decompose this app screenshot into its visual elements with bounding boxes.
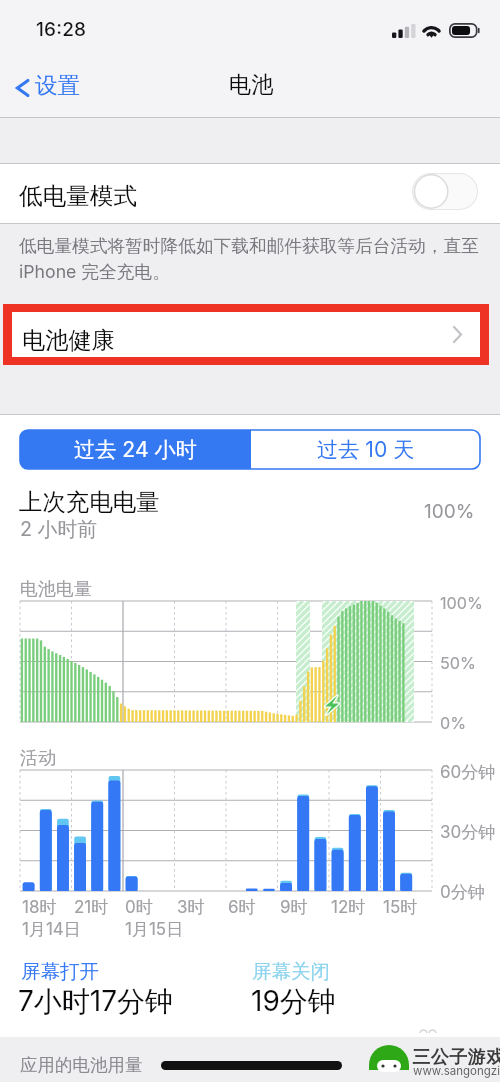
staticText: 三公子游戏网: [412, 1046, 500, 1069]
staticText: 19分钟: [251, 984, 336, 1019]
staticText: 1月14日: [22, 919, 81, 941]
staticText: 60分钟: [440, 762, 496, 784]
staticText: 过去 24 小时: [74, 436, 197, 463]
button[interactable]: 低电量模式开关: [412, 173, 478, 210]
staticText: 100%: [424, 500, 475, 523]
staticText: 50%: [440, 653, 476, 673]
staticText: 电池: [229, 71, 274, 99]
staticText: 1月15日: [125, 919, 184, 941]
staticText: 6时: [228, 897, 256, 919]
staticText: 上次充电电量: [19, 487, 160, 516]
staticText: 0时: [125, 897, 153, 919]
staticText: 低电量模式将暂时降低如下载和邮件获取等后台活动，直至 iPhone 完全充电。: [19, 235, 489, 283]
button[interactable]: 过去 10 天: [251, 430, 480, 469]
staticText: 18时: [22, 897, 57, 919]
button[interactable]: 电池健康: [12, 312, 480, 357]
staticText: 15时: [383, 897, 418, 919]
staticText: 设置: [35, 71, 81, 99]
staticText: 低电量模式: [19, 181, 137, 211]
button[interactable]: 设置: [14, 66, 81, 110]
staticText: 屏幕打开: [21, 959, 99, 984]
staticText: 2 小时前: [20, 517, 98, 542]
staticText: 电池电量: [20, 578, 92, 601]
staticText: 电池健康: [22, 326, 115, 355]
staticText: 9时: [280, 897, 308, 919]
staticText: 活动: [20, 747, 56, 770]
staticText: 0%: [440, 713, 467, 733]
staticText: 3时: [177, 897, 205, 919]
staticText: www.sangongzi.net: [413, 1064, 500, 1078]
staticText: 过去 10 天: [317, 436, 415, 463]
staticText: 应用的电池用量: [20, 1054, 143, 1076]
staticText: 21时: [74, 897, 109, 919]
staticText: 0分钟: [440, 882, 485, 904]
staticText: 12时: [331, 897, 366, 919]
other: 更多: [452, 325, 463, 344]
button[interactable]: 低电量模式: [0, 164, 500, 223]
staticText: 屏幕关闭: [252, 959, 330, 984]
staticText: 100%: [440, 593, 483, 613]
button[interactable]: 过去 24 小时: [20, 430, 251, 469]
staticText: 30分钟: [440, 822, 496, 844]
staticText: 7小时17分钟: [18, 984, 174, 1019]
staticText: 16:28: [36, 18, 87, 41]
